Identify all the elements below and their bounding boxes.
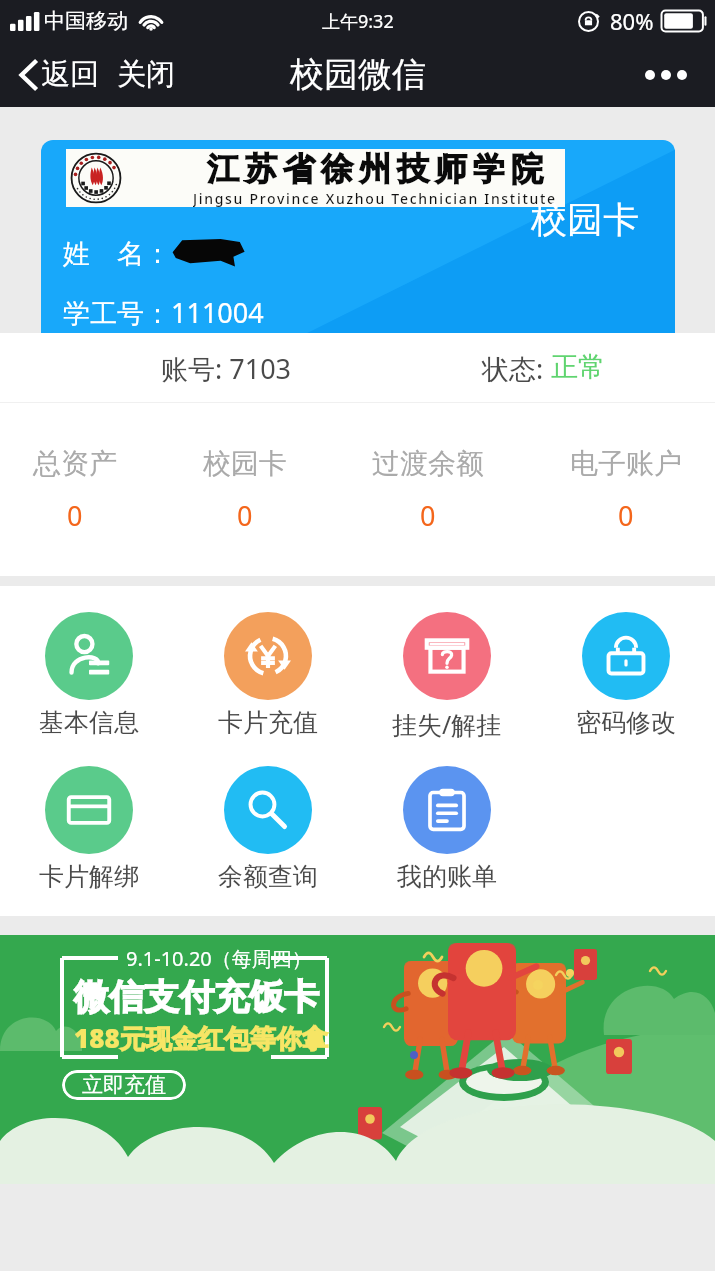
button[interactable]: 过渡余额 [372,446,484,534]
button[interactable]: 卡片解绑 [0,766,178,892]
button[interactable]: 返回 [11,50,107,99]
button[interactable]: 余额查询 [178,766,357,892]
staticText: 卡片充值 [218,707,318,738]
button[interactable]: 立即充值 [62,1070,186,1100]
staticText: 上午9:32 [322,9,394,34]
staticText: 挂失/解挂 [392,707,502,741]
staticText: 校园卡 [203,446,287,481]
staticText: 江苏省徐州技师学院 [204,149,546,189]
staticText: 80% [610,6,654,36]
staticText: 校园微信 [290,53,426,96]
staticText: 学工号：111004 [63,294,264,331]
button[interactable]: 我的账单 [357,766,536,892]
staticText: 过渡余额 [372,446,484,481]
staticText: 校园卡 [531,197,639,242]
staticText: 密码修改 [576,707,676,738]
staticText: 姓 名： [63,234,171,271]
button[interactable]: 基本信息 [0,612,178,738]
button[interactable]: 密码修改 [536,612,715,738]
button[interactable]: 挂失/解挂 [357,612,536,741]
staticText: 微信支付充饭卡 [74,975,319,1019]
staticText: Jingsu Province Xuzhou Technician Instit… [193,189,557,207]
staticText: 立即充值 [82,1072,166,1098]
staticText: 0 [67,497,83,534]
button[interactable]: 状态: [482,350,605,387]
staticText: 状态: [482,350,551,387]
staticText: 关闭 [117,56,175,93]
staticText: 返回 [41,56,99,93]
staticText: 电子账户 [570,446,682,481]
staticText: 我的账单 [397,861,497,892]
staticText: 基本信息 [39,707,139,738]
staticText: 188元现金红包等你拿 [74,1020,328,1056]
button[interactable]: More options [635,60,697,90]
button[interactable]: WeChat pay meal card promotion [0,935,715,1184]
button[interactable]: 卡片充值 [178,612,357,738]
button[interactable]: 关闭 [111,50,181,99]
staticText: 正常 [551,350,605,384]
staticText: 总资产 [33,446,117,481]
staticText: 中国移动 [44,8,128,34]
staticText: 卡片解绑 [39,861,139,892]
button[interactable]: 账号: 7103 [161,350,292,387]
staticText: 0 [618,497,634,534]
button[interactable]: 电子账户 [570,446,682,534]
staticText: 账号: 7103 [161,350,292,387]
staticText: 9.1-10.20（每周四） [126,945,312,972]
button[interactable]: 校园卡 [203,446,287,534]
staticText: 0 [420,497,436,534]
staticText: 0 [237,497,253,534]
staticText: 余额查询 [218,861,318,892]
button[interactable]: 总资产 [33,446,117,534]
